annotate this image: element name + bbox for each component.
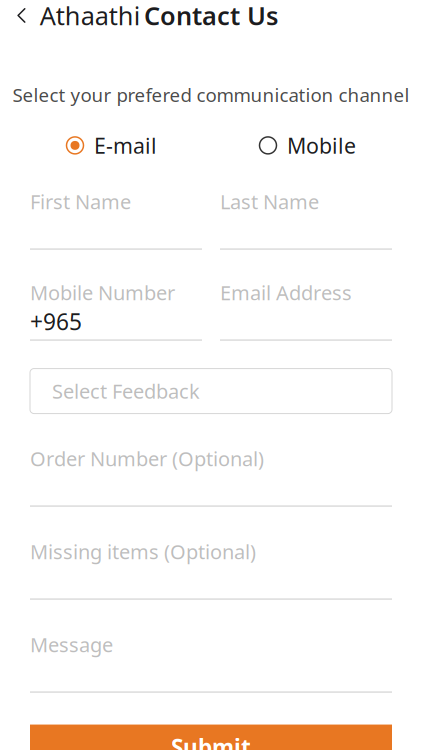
- staticText: Select Feedback: [52, 378, 200, 404]
- staticText: Contact Us: [144, 0, 278, 32]
- staticText: Mobile: [287, 131, 356, 159]
- button[interactable]: Submit: [30, 725, 392, 750]
- staticText: Email Address: [220, 279, 352, 306]
- button[interactable]: E-mail: [66, 127, 157, 163]
- staticText: Order Number (Optional): [30, 445, 264, 472]
- staticText: +965: [30, 306, 82, 337]
- staticText: Select your prefered communication chann…: [12, 82, 409, 107]
- staticText: Mobile Number: [30, 279, 175, 306]
- button[interactable]: Select Feedback: [30, 369, 392, 414]
- staticText: Missing items (Optional): [30, 538, 256, 565]
- button[interactable]: Athaathi: [0, 0, 151, 38]
- button[interactable]: Mobile: [259, 127, 356, 163]
- staticText: Athaathi: [40, 0, 141, 32]
- staticText: E-mail: [94, 131, 157, 159]
- staticText: Message: [30, 631, 113, 658]
- staticText: Submit: [171, 732, 251, 750]
- staticText: First Name: [30, 188, 131, 215]
- staticText: Last Name: [220, 188, 319, 215]
